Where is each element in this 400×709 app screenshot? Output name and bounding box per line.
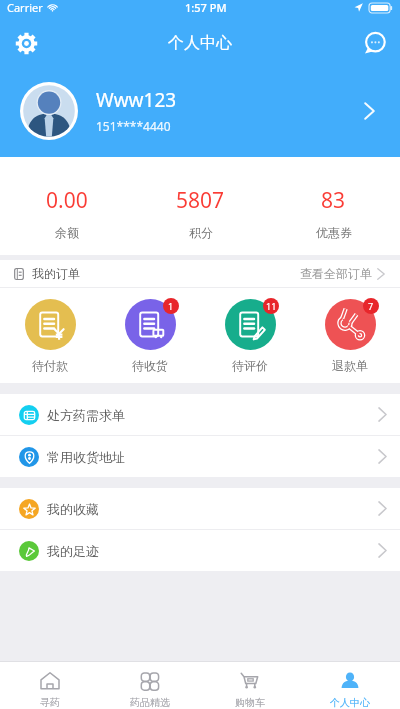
- button[interactable]: 我的足迹: [0, 530, 400, 571]
- staticText: 处方药需求单: [47, 407, 125, 423]
- button[interactable]: 我的收藏: [0, 488, 400, 529]
- button[interactable]: 寻药: [0, 663, 100, 709]
- staticText: 0.00: [46, 186, 88, 215]
- staticText: 个人中心: [330, 696, 370, 709]
- button[interactable]: 5807: [134, 173, 267, 240]
- staticText: 11: [266, 300, 277, 312]
- staticText: 1: [168, 300, 174, 312]
- staticText: 7: [368, 300, 374, 312]
- staticText: 药品精选: [130, 696, 170, 709]
- staticText: 退款单: [332, 358, 368, 373]
- button[interactable]: 11: [200, 298, 300, 373]
- staticText: 83: [321, 186, 346, 215]
- button[interactable]: 个人中心: [300, 663, 400, 709]
- staticText: 5807: [176, 186, 225, 215]
- staticText: 常用收货地址: [47, 449, 125, 465]
- staticText: 余额: [55, 225, 79, 240]
- staticText: 我的收藏: [47, 501, 99, 517]
- staticText: 1:57 PM: [185, 0, 227, 15]
- button[interactable]: Settings: [8, 25, 44, 61]
- staticText: 待评价: [232, 358, 268, 373]
- button[interactable]: 常用收货地址: [0, 436, 400, 477]
- staticText: 个人中心: [168, 33, 232, 53]
- staticText: 积分: [189, 225, 213, 240]
- staticText: 待收货: [132, 358, 168, 373]
- staticText: Carrier: [7, 0, 43, 15]
- staticText: 我的足迹: [47, 543, 99, 559]
- button[interactable]: 0.00: [0, 173, 134, 240]
- staticText: 我的订单: [32, 266, 80, 281]
- button[interactable]: 7: [300, 298, 400, 373]
- button[interactable]: Www123: [0, 64, 400, 157]
- staticText: 寻药: [40, 696, 60, 709]
- staticText: 查看全部订单: [300, 266, 372, 281]
- button[interactable]: 83: [267, 173, 400, 240]
- staticText: 151****4440: [96, 118, 171, 134]
- button[interactable]: 药品精选: [100, 663, 200, 709]
- button[interactable]: 待付款: [0, 298, 100, 373]
- staticText: 优惠券: [316, 225, 352, 240]
- button[interactable]: Messages: [356, 25, 392, 61]
- button[interactable]: 处方药需求单: [0, 394, 400, 435]
- staticText: 待付款: [32, 358, 68, 373]
- staticText: 购物车: [235, 696, 265, 709]
- button[interactable]: 1: [100, 298, 200, 373]
- button[interactable]: 购物车: [200, 663, 300, 709]
- staticText: Www123: [96, 87, 177, 113]
- button[interactable]: 我的订单: [0, 260, 400, 287]
